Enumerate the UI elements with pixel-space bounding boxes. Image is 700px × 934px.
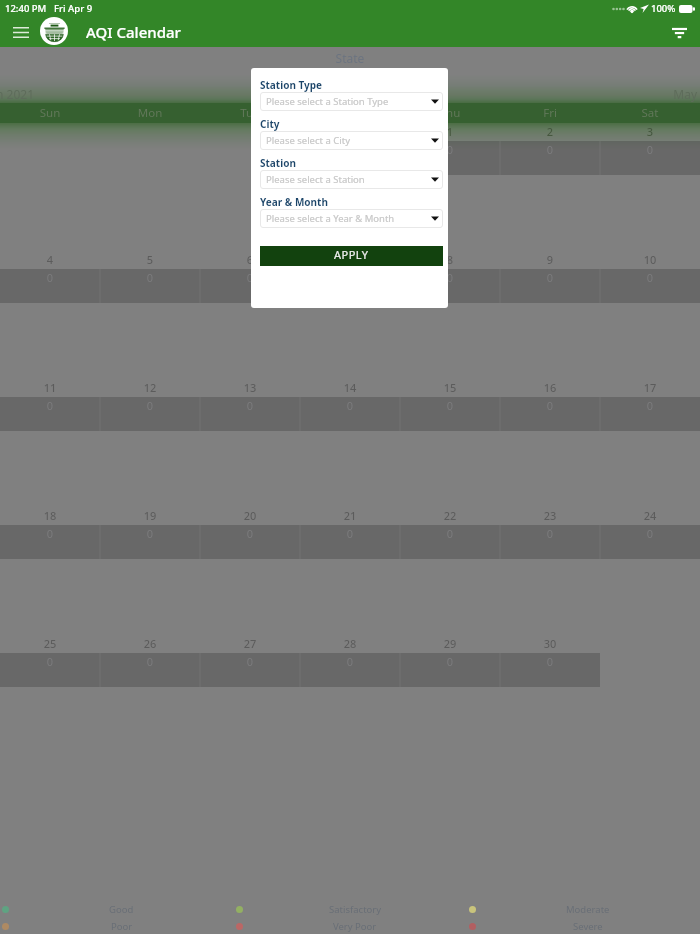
staticText: Mon	[100, 105, 200, 121]
staticText: Thu	[400, 105, 500, 121]
staticText: City	[260, 117, 280, 131]
staticText: 14	[300, 380, 400, 395]
staticText: 0	[200, 270, 300, 285]
staticText: Please select a Station Type	[266, 95, 389, 108]
button[interactable]: Poor	[0, 918, 234, 934]
staticText: 0	[400, 270, 500, 285]
staticText: 0	[400, 142, 500, 157]
button[interactable]: APPLY	[260, 246, 443, 266]
staticText: 1	[400, 124, 500, 139]
staticText: 19	[100, 508, 200, 523]
staticText: Moderate	[566, 903, 610, 916]
staticText: 18	[0, 508, 100, 523]
button[interactable]: Please select a Station	[260, 170, 443, 189]
staticText: Please select a Year & Month	[266, 212, 395, 225]
staticText: 3	[600, 124, 700, 139]
staticText: Sat	[600, 105, 700, 121]
staticText: Very Poor	[333, 920, 377, 933]
staticText: 7	[300, 252, 400, 267]
staticText: APPLY	[334, 247, 369, 262]
staticText: 0	[500, 142, 600, 157]
staticText: 4	[0, 252, 100, 267]
staticText: Good	[109, 903, 134, 916]
staticText: 9	[500, 252, 600, 267]
staticText: 11	[0, 380, 100, 395]
staticText: 16	[500, 380, 600, 395]
button[interactable]: Satisfactory	[234, 901, 467, 918]
staticText: 25	[0, 636, 100, 651]
button[interactable]: Please select a Year & Month	[260, 209, 443, 228]
staticText: 22	[400, 508, 500, 523]
button[interactable]: Good	[0, 901, 234, 918]
staticText: Station Type	[260, 78, 323, 92]
staticText: Sun	[0, 105, 100, 121]
staticText: Station	[260, 156, 296, 170]
button[interactable]: Open navigation menu	[9, 20, 33, 44]
staticText: Please select a Station	[266, 173, 365, 186]
staticText: AQI Calendar	[86, 22, 181, 42]
staticText: 13	[200, 380, 300, 395]
staticText: Wed	[300, 105, 400, 121]
staticText: 12	[100, 380, 200, 395]
button[interactable]: Please select a City	[260, 131, 443, 150]
staticText: 12:40 PM	[5, 2, 47, 15]
staticText: 15	[400, 380, 500, 395]
staticText: 100%	[651, 2, 676, 15]
staticText: 5	[100, 252, 200, 267]
button[interactable]: CPCB logo	[40, 17, 68, 45]
staticText: n 2021	[0, 86, 116, 102]
staticText: Poor	[111, 920, 133, 933]
staticText: 23	[500, 508, 600, 523]
staticText: 20	[200, 508, 300, 523]
button[interactable]: Filter	[667, 20, 691, 44]
staticText: Tue	[200, 105, 300, 121]
staticText: 17	[600, 380, 700, 395]
button[interactable]: Severe	[467, 918, 700, 934]
staticText: 8	[400, 252, 500, 267]
staticText: May	[577, 86, 697, 102]
staticText: 10	[600, 252, 700, 267]
staticText: 24	[600, 508, 700, 523]
staticText: 28	[300, 636, 400, 651]
staticText: 29	[400, 636, 500, 651]
staticText: 21	[300, 508, 400, 523]
button[interactable]: Very Poor	[234, 918, 467, 934]
staticText: Satisfactory	[329, 903, 382, 916]
button[interactable]: Please select a Station Type	[260, 92, 443, 111]
staticText: 27	[200, 636, 300, 651]
staticText: 2	[500, 124, 600, 139]
button[interactable]: Moderate	[467, 901, 700, 918]
staticText: 30	[500, 636, 600, 651]
staticText: Year & Month	[260, 195, 328, 209]
staticText: Fri	[500, 105, 600, 121]
staticText: Please select a City	[266, 134, 350, 147]
staticText: Fri Apr 9	[54, 2, 93, 15]
staticText: 26	[100, 636, 200, 651]
staticText: 6	[200, 252, 300, 267]
staticText: Severe	[573, 920, 603, 933]
